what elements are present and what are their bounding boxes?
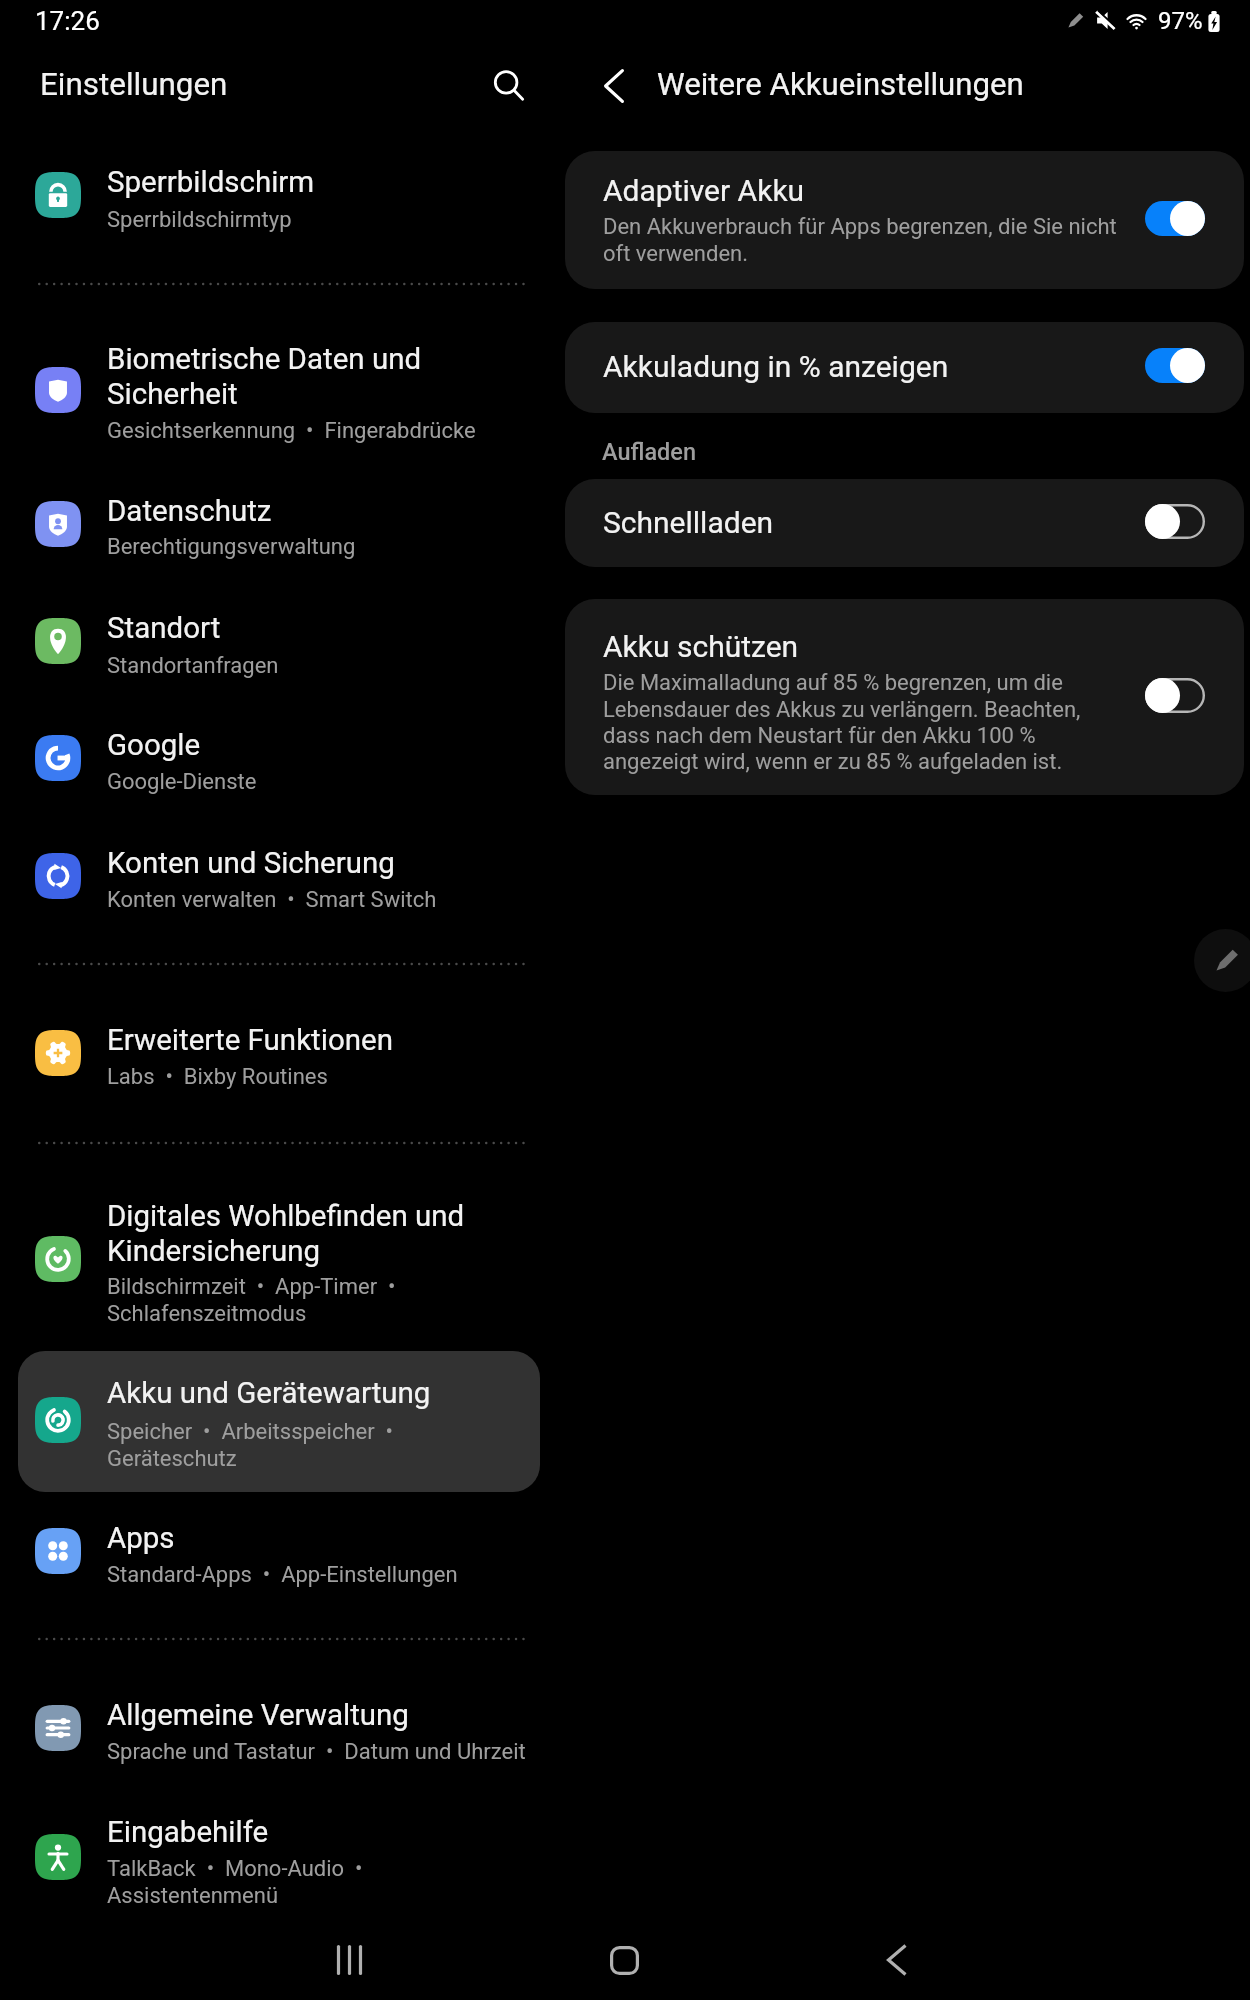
staticText: Gesichtserkennung • Fingerabdrücke [107, 416, 476, 443]
staticText: Den Akkuverbrauch für Apps begrenzen, di… [603, 214, 1117, 266]
staticText: Standortanfragen [107, 651, 279, 678]
staticText: Sprache und Tastatur • Datum und Uhrzeit [107, 1737, 526, 1764]
staticText: Die Maximalladung auf 85 % begrenzen, um… [603, 670, 1081, 774]
button[interactable]: Schnellladen [565, 479, 1244, 567]
staticText: 17:26 [35, 6, 100, 36]
button[interactable]: Biometrische Daten und Sicherheit [18, 332, 540, 448]
button[interactable]: Switch on [1145, 201, 1205, 236]
button[interactable]: Edit [1194, 929, 1250, 992]
button[interactable]: Akku schützen [565, 599, 1244, 795]
staticText: TalkBack • Mono-Audio • Assistentenmenü [107, 1854, 363, 1908]
button[interactable]: Akku und Gerätewartung [18, 1351, 540, 1492]
staticText: Speicher • Arbeitsspeicher • Geräteschut… [107, 1417, 393, 1471]
staticText: Standard-Apps • App-Einstellungen [107, 1560, 458, 1587]
staticText: Berechtigungsverwaltung [107, 532, 356, 559]
staticText: Labs • Bixby Routines [107, 1062, 328, 1089]
staticText: Schnellladen [603, 505, 774, 540]
button[interactable]: Eingabehilfe [18, 1805, 540, 1915]
button[interactable]: Adaptiver Akku [565, 151, 1244, 289]
staticText: Apps [107, 1520, 175, 1555]
staticText: Konten verwalten • Smart Switch [107, 885, 437, 912]
button[interactable]: Switch on [1145, 348, 1205, 383]
staticText: Datenschutz [107, 493, 272, 528]
staticText: Biometrische Daten und Sicherheit [107, 341, 422, 411]
button[interactable]: Digitales Wohlbefinden und Kindersicheru… [18, 1189, 540, 1329]
staticText: Bildschirmzeit • App-Timer • Schlafensze… [107, 1272, 396, 1326]
staticText: Akku schützen [603, 629, 799, 664]
button[interactable]: Search [479, 56, 539, 116]
button[interactable]: Sperrbildschirm [18, 154, 540, 236]
button[interactable]: Allgemeine Verwaltung [18, 1688, 540, 1768]
button[interactable]: Home [566, 1918, 682, 2000]
staticText: Google [107, 727, 201, 762]
button[interactable]: Konten und Sicherung [18, 836, 540, 916]
staticText: Google-Dienste [107, 767, 257, 794]
button[interactable]: Back [584, 56, 644, 116]
staticText: Allgemeine Verwaltung [107, 1697, 409, 1732]
button[interactable]: Datenschutz [18, 484, 540, 564]
staticText: Digitales Wohlbefinden und Kindersicheru… [107, 1198, 465, 1268]
button[interactable]: Akkuladung in % anzeigen [565, 322, 1244, 413]
staticText: Eingabehilfe [107, 1814, 269, 1849]
button[interactable]: Apps [18, 1511, 540, 1591]
staticText: Sperrbildschirm [107, 164, 315, 199]
staticText: Akku und Gerätewartung [107, 1375, 431, 1410]
staticText: Aufladen [602, 438, 697, 466]
button[interactable]: Standort [18, 601, 540, 681]
staticText: Akkuladung in % anzeigen [603, 349, 949, 384]
button[interactable]: Switch off [1145, 504, 1205, 539]
staticText: Adaptiver Akku [603, 173, 805, 208]
staticText: Einstellungen [40, 66, 228, 103]
staticText: Sperrbildschirmtyp [107, 205, 292, 232]
button[interactable]: Recent apps [292, 1918, 408, 2000]
staticText: Weitere Akkueinstellungen [657, 66, 1024, 103]
staticText: Erweiterte Funktionen [107, 1022, 393, 1057]
button[interactable]: Switch off [1145, 678, 1205, 713]
button[interactable]: Google [18, 718, 540, 798]
button[interactable]: Erweiterte Funktionen [18, 1013, 540, 1093]
button[interactable]: Back [839, 1918, 955, 2000]
staticText: Konten und Sicherung [107, 845, 395, 880]
staticText: 97% [1158, 7, 1203, 35]
staticText: Standort [107, 610, 221, 645]
